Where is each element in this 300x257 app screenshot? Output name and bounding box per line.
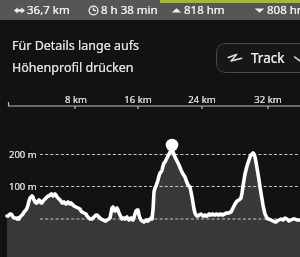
- staticText: 808 hm: [267, 2, 300, 18]
- button[interactable]: 818 hm: [171, 0, 241, 20]
- staticText: 16 km: [118, 93, 158, 106]
- staticText: 818 hm: [184, 2, 225, 18]
- staticText: 100 m: [9, 180, 37, 193]
- button[interactable]: 36,7 km: [14, 0, 84, 20]
- staticText: Höhenprofil drücken: [12, 59, 134, 76]
- other: 808 hm: [254, 5, 265, 16]
- staticText: 8 h 38 min: [101, 2, 158, 18]
- staticText: 32 km: [248, 93, 288, 106]
- staticText: 36,7 km: [27, 2, 70, 18]
- button[interactable]: 808 hm: [254, 0, 300, 20]
- staticText: 200 m: [9, 148, 37, 161]
- button[interactable]: Track: [216, 43, 300, 73]
- button[interactable]: 8 h 38 min: [88, 0, 158, 20]
- staticText: 24 km: [182, 93, 222, 106]
- staticText: 0 m: [9, 213, 26, 226]
- staticText: 8 km: [56, 93, 96, 106]
- staticText: Für Details lange aufs: [12, 37, 139, 54]
- other: 36,7 km: [14, 5, 25, 16]
- other: 8 h 38 min: [88, 5, 99, 16]
- staticText: Track: [251, 49, 285, 67]
- other: 818 hm: [171, 5, 182, 16]
